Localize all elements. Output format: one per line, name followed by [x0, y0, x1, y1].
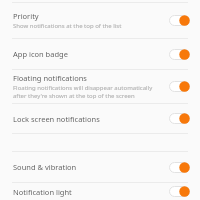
staticText: Floating notifications	[13, 73, 87, 83]
staticText: Notification light	[13, 187, 72, 197]
button[interactable]	[169, 113, 190, 124]
button[interactable]	[169, 81, 190, 92]
staticText: App icon badge	[13, 49, 68, 59]
staticText: Floating notifications will disappear au…	[13, 84, 165, 100]
button[interactable]	[169, 186, 190, 197]
staticText: Priority	[13, 11, 39, 21]
button[interactable]	[169, 15, 190, 26]
button[interactable]: Notification light	[0, 183, 200, 200]
button[interactable]: Floating notifications	[0, 70, 200, 103]
button[interactable]: Priority	[0, 3, 200, 38]
button[interactable]: Lock screen notifications	[0, 104, 200, 133]
staticText: Sound & vibration	[13, 162, 77, 172]
button[interactable]: App icon badge	[0, 39, 200, 69]
button[interactable]	[169, 49, 190, 60]
staticText: Show notifications at the top of the lis…	[13, 22, 122, 30]
staticText: Lock screen notifications	[13, 114, 100, 124]
button[interactable]: Sound & vibration	[0, 152, 200, 182]
button[interactable]	[169, 162, 190, 173]
